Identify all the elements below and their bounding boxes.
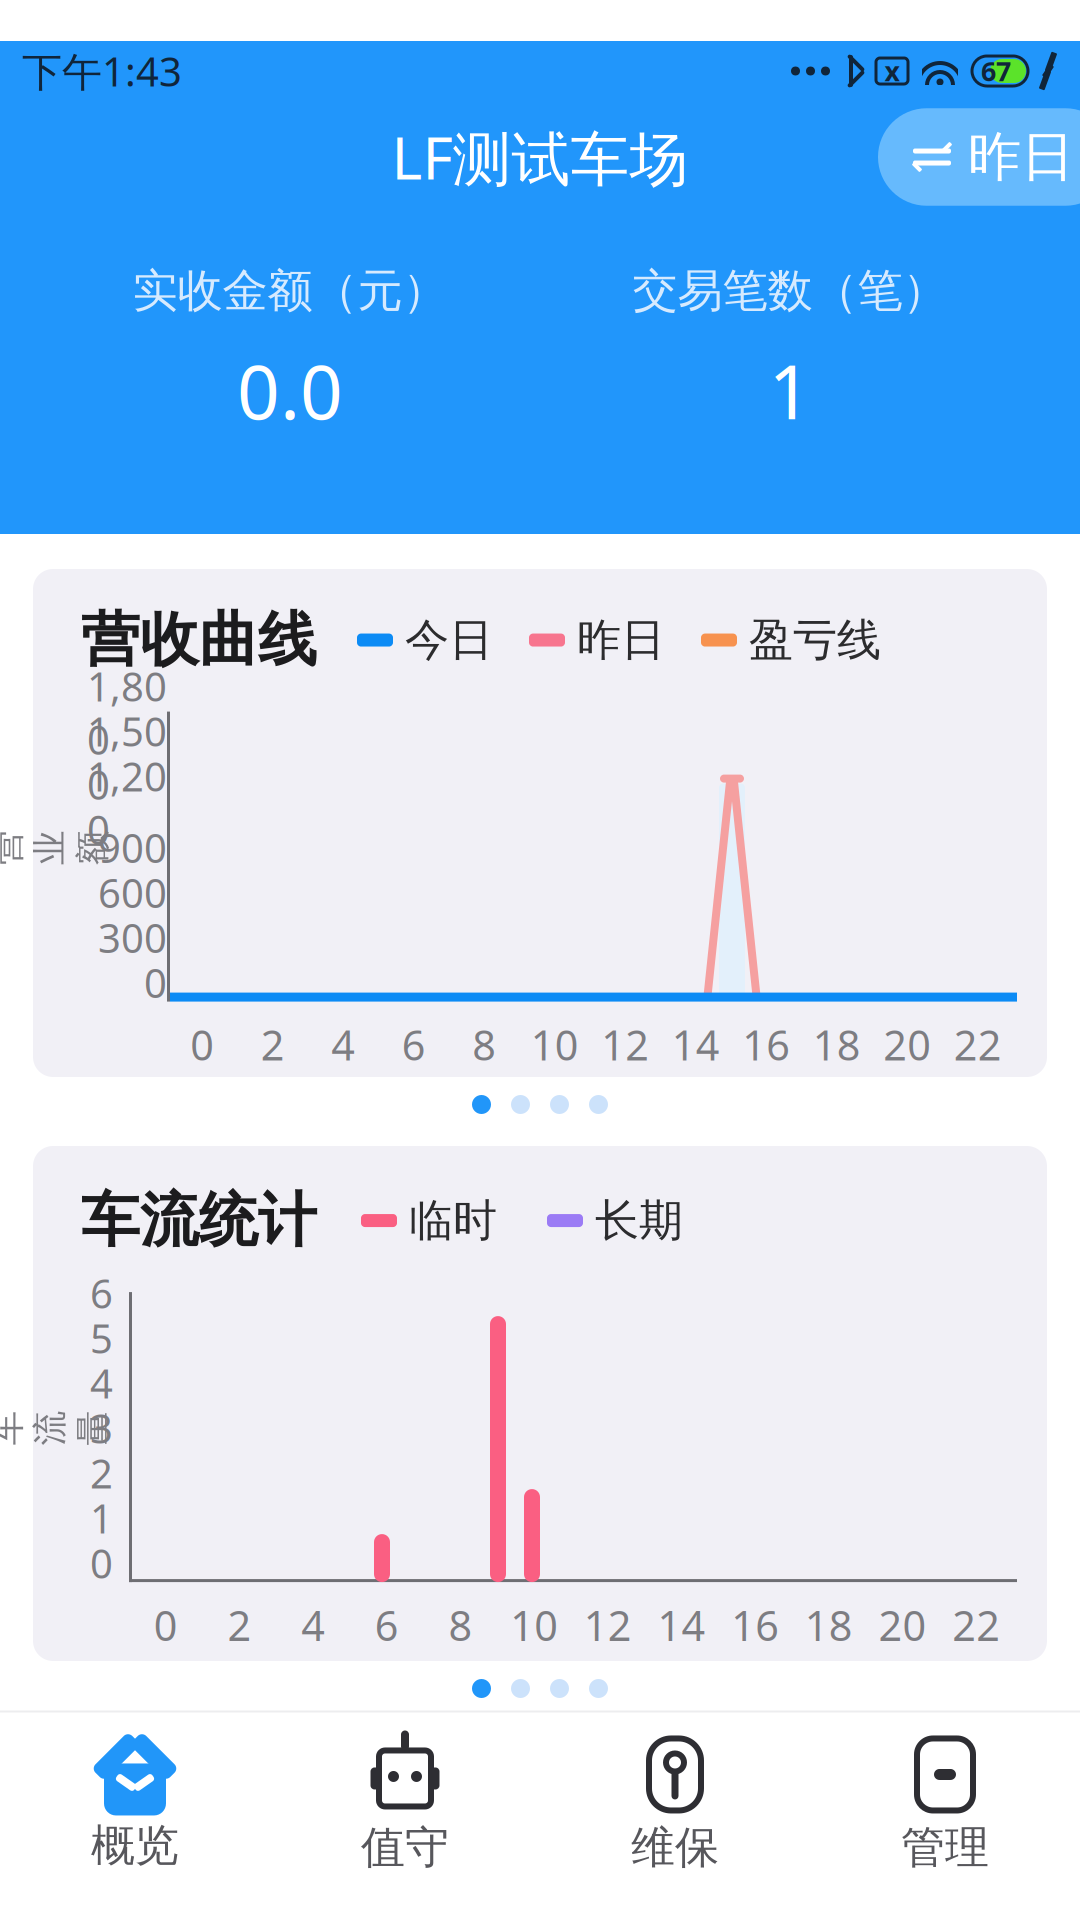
staticText: 8	[448, 1598, 472, 1652]
staticText: 1,800	[87, 659, 167, 766]
button[interactable]: 值守	[270, 1724, 540, 1884]
staticText: 8	[472, 1017, 496, 1072]
staticText: 10	[531, 1017, 579, 1072]
staticText: 3	[90, 1401, 113, 1455]
staticText: 5	[90, 1311, 113, 1365]
staticText: 18	[805, 1598, 853, 1652]
button[interactable]: Revenue chart pages	[472, 1077, 608, 1132]
button[interactable]: 概览	[0, 1726, 270, 1882]
button[interactable]: 管理	[810, 1724, 1080, 1884]
staticText: 900	[98, 821, 167, 874]
staticText: 0	[190, 1017, 214, 1072]
staticText: 0	[90, 1536, 113, 1590]
staticText: LF测试车场	[391, 118, 688, 196]
staticText: 管理	[901, 1820, 989, 1874]
staticText: 6	[90, 1266, 113, 1320]
staticText: 4	[301, 1598, 325, 1652]
staticText: 16	[731, 1598, 779, 1652]
staticText: 14	[672, 1017, 720, 1072]
staticText: 1,500	[87, 704, 167, 811]
staticText: 盈亏线	[749, 613, 881, 667]
staticText: 18	[813, 1017, 861, 1072]
staticText: 营收曲线	[81, 604, 317, 676]
staticText: 2	[261, 1017, 285, 1072]
staticText: 1,200	[87, 749, 167, 856]
staticText: 值守	[361, 1820, 449, 1874]
staticText: 2	[90, 1446, 113, 1500]
staticText: 1	[90, 1491, 113, 1545]
staticText: 22	[954, 1017, 1002, 1072]
staticText: 营业额	[32, 784, 67, 911]
staticText: 20	[878, 1598, 926, 1652]
staticText: 临时	[409, 1193, 497, 1247]
staticText: 维保	[631, 1820, 719, 1874]
staticText: 概览	[91, 1818, 179, 1872]
staticText: 12	[601, 1017, 649, 1072]
staticText: 0.0	[237, 341, 343, 440]
staticText: 300	[98, 911, 167, 964]
staticText: 16	[742, 1017, 790, 1072]
staticText: 1	[768, 341, 811, 440]
staticText: 0	[154, 1598, 178, 1652]
staticText: 下午1:43	[22, 44, 182, 97]
staticText: 600	[98, 866, 167, 919]
staticText: 车流统计	[81, 1184, 317, 1257]
staticText: 6	[375, 1598, 399, 1652]
staticText: 2	[227, 1598, 251, 1652]
staticText: x	[884, 53, 899, 89]
staticText: 今日	[405, 613, 493, 667]
staticText: 14	[657, 1598, 705, 1652]
staticText: 12	[584, 1598, 632, 1652]
staticText: 4	[90, 1356, 113, 1410]
staticText: 22	[952, 1598, 1000, 1652]
staticText: 长期	[595, 1193, 683, 1247]
staticText: 20	[883, 1017, 931, 1072]
staticText: 6	[402, 1017, 426, 1072]
button[interactable]: 昨日	[844, 108, 1080, 206]
button[interactable]: Traffic chart pages	[472, 1661, 608, 1716]
staticText: 昨日	[968, 124, 1074, 190]
button[interactable]: 维保	[540, 1724, 810, 1884]
staticText: 4	[331, 1017, 355, 1072]
staticText: 实收金额（元）	[132, 263, 447, 319]
staticText: 交易笔数（笔）	[632, 263, 947, 319]
staticText: 昨日	[577, 613, 665, 667]
staticText: 车流量	[32, 1364, 67, 1492]
staticText: 10	[510, 1598, 558, 1652]
staticText: 67	[981, 53, 1011, 89]
staticText: 0	[144, 956, 167, 1009]
